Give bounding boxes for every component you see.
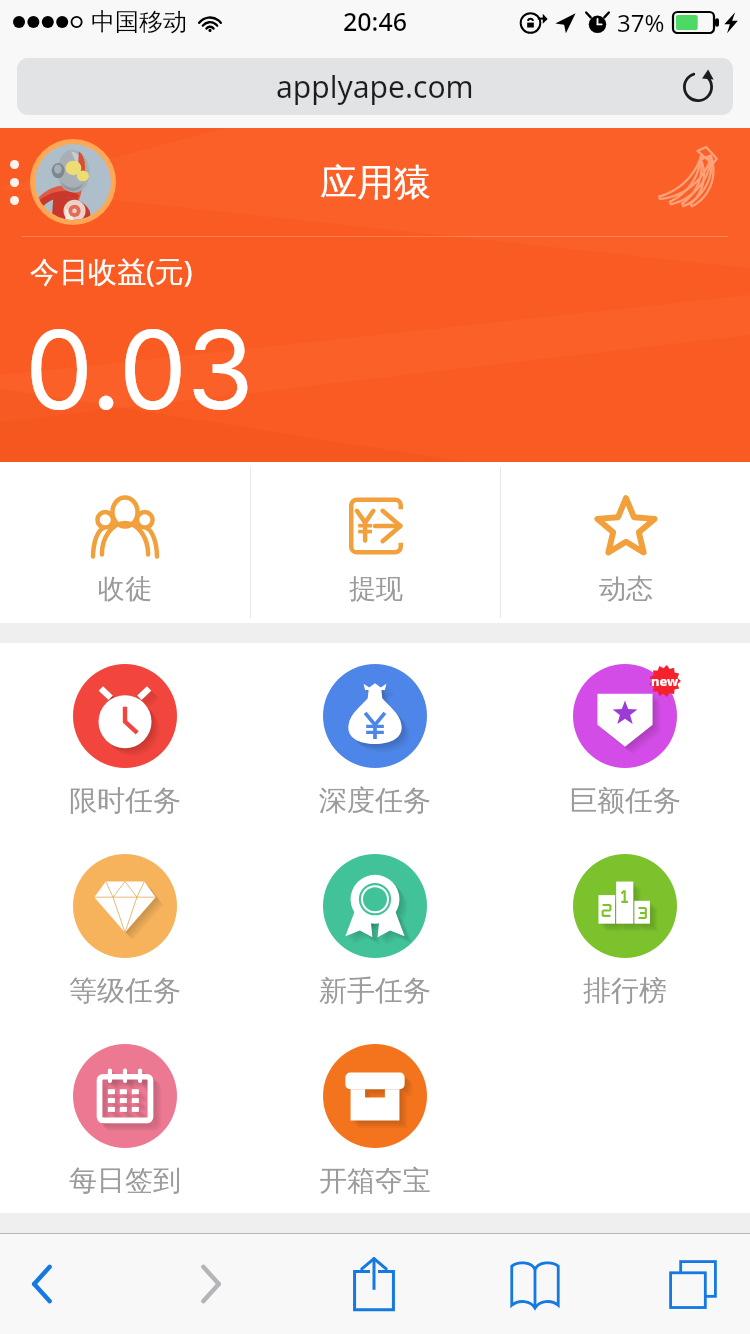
button[interactable]: Bookmarks [474,1234,596,1334]
staticText: 中国移动 [91,7,187,37]
staticText: 排行榜 [583,973,667,1008]
button[interactable]: Bananas [656,144,732,210]
button[interactable]: 收徒 [0,462,250,623]
staticText: 应用猿 [320,159,431,206]
button[interactable]: Menu [10,160,19,205]
button[interactable]: Profile [30,139,116,225]
button[interactable]: 深度任务 [250,643,500,833]
staticText: 今日收益(元) [30,251,193,291]
button[interactable]: Back [0,1234,104,1334]
button[interactable]: 等级任务 [0,833,250,1023]
staticText: 新手任务 [319,973,431,1008]
button[interactable]: Forward [149,1234,271,1334]
button[interactable]: 限时任务 [0,643,250,833]
staticText: 限时任务 [69,783,181,818]
button[interactable]: Tabs [632,1234,750,1334]
staticText: 收徒 [98,572,152,606]
staticText: 巨额任务 [569,783,681,818]
button[interactable]: Reload [678,67,718,107]
button[interactable]: 开箱夺宝 [250,1023,500,1213]
button[interactable]: 每日签到 [0,1023,250,1213]
button[interactable]: 动态 [501,462,750,623]
button[interactable]: 提现 [251,462,500,623]
staticText: 每日签到 [69,1163,181,1198]
staticText: 开箱夺宝 [319,1163,431,1198]
button[interactable]: applyape.com [17,58,733,115]
button[interactable]: 排行榜 [500,833,750,1023]
staticText: 等级任务 [69,973,181,1008]
staticText: applyape.com [276,66,474,107]
button[interactable]: 新手任务 [250,833,500,1023]
button[interactable]: new [500,643,750,833]
staticText: 深度任务 [319,783,431,818]
staticText: 动态 [599,572,653,606]
button[interactable]: Share [313,1234,435,1334]
staticText: 提现 [349,572,403,606]
staticText: 37% [617,6,665,39]
staticText: new [651,672,679,690]
staticText: 0.03 [25,304,254,435]
staticText: 20:46 [343,4,408,38]
